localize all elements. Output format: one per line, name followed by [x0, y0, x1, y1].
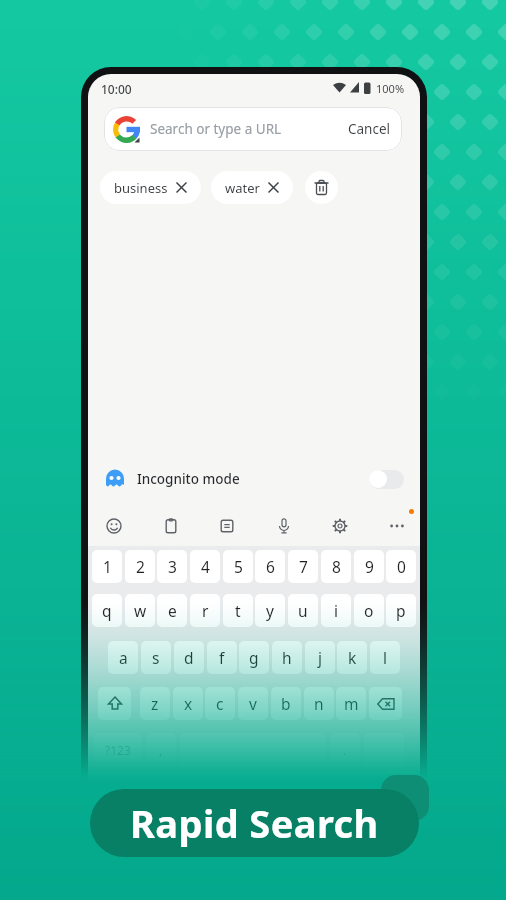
button[interactable]: 2 — [125, 550, 155, 583]
staticText: 2 — [136, 556, 145, 577]
staticText: l — [383, 647, 387, 668]
button[interactable]: h — [272, 641, 302, 674]
staticText: 4 — [201, 556, 210, 577]
button[interactable] — [369, 687, 402, 720]
button[interactable]: 0 — [386, 550, 416, 583]
staticText: 10:00 — [101, 81, 132, 97]
button[interactable]: r — [190, 594, 220, 627]
button[interactable]: 5 — [223, 550, 253, 583]
staticText: Cancel — [348, 120, 391, 138]
button[interactable]: 6 — [255, 550, 285, 583]
button[interactable]: x — [173, 687, 203, 720]
staticText: , — [159, 742, 163, 758]
staticText: m — [344, 693, 359, 714]
button[interactable]: 8 — [321, 550, 351, 583]
staticText: t — [235, 600, 241, 621]
staticText: 0 — [397, 556, 406, 577]
button[interactable]: Incognito mode — [104, 468, 404, 489]
button[interactable]: Cancel — [342, 114, 397, 144]
button[interactable] — [270, 512, 298, 540]
staticText: 3 — [168, 556, 177, 577]
staticText: w — [134, 600, 147, 621]
staticText: r — [202, 600, 209, 621]
button[interactable]: q — [92, 594, 122, 627]
staticText: Incognito mode — [137, 470, 240, 488]
button[interactable]: g — [239, 641, 269, 674]
button[interactable]: . — [330, 733, 360, 766]
button[interactable] — [180, 733, 326, 766]
staticText: p — [396, 600, 406, 621]
button[interactable]: z — [140, 687, 170, 720]
staticText: business — [114, 179, 168, 197]
staticText: . — [343, 742, 347, 758]
staticText: 7 — [299, 556, 308, 577]
button[interactable]: y — [255, 594, 285, 627]
button[interactable] — [213, 512, 241, 540]
button[interactable]: water — [211, 171, 293, 204]
button[interactable] — [305, 171, 338, 204]
button[interactable]: o — [354, 594, 384, 627]
staticText: e — [168, 600, 177, 621]
button[interactable]: m — [336, 687, 366, 720]
staticText: u — [298, 600, 308, 621]
button[interactable]: f — [207, 641, 237, 674]
button[interactable]: business — [100, 171, 201, 204]
staticText: o — [364, 600, 374, 621]
button[interactable]: v — [238, 687, 268, 720]
button[interactable]: a — [108, 641, 138, 674]
button[interactable]: d — [174, 641, 204, 674]
button[interactable]: u — [288, 594, 318, 627]
staticText: Search or type a URL — [150, 120, 282, 138]
staticText: d — [184, 647, 194, 668]
button[interactable]: Rapid Search — [90, 789, 419, 857]
staticText: c — [216, 693, 224, 714]
staticText: 1 — [103, 556, 112, 577]
staticText: n — [314, 693, 324, 714]
staticText: 8 — [332, 556, 341, 577]
staticText: 6 — [266, 556, 275, 577]
button[interactable]: i — [321, 594, 351, 627]
staticText: z — [151, 693, 159, 714]
button[interactable] — [157, 512, 185, 540]
button[interactable]: 3 — [157, 550, 187, 583]
button[interactable]: 9 — [354, 550, 384, 583]
staticText: i — [334, 600, 338, 621]
button[interactable] — [98, 687, 131, 720]
button[interactable]: 1 — [92, 550, 122, 583]
button[interactable]: j — [305, 641, 335, 674]
button[interactable]: b — [271, 687, 301, 720]
staticText: y — [266, 600, 274, 621]
staticText: v — [249, 693, 257, 714]
staticText: 9 — [365, 556, 374, 577]
button[interactable]: , — [146, 733, 176, 766]
button[interactable]: 7 — [288, 550, 318, 583]
button[interactable] — [364, 733, 404, 766]
button[interactable]: l — [370, 641, 400, 674]
staticText: j — [318, 647, 322, 668]
staticText: ?123 — [105, 742, 131, 758]
staticText: 100% — [376, 81, 405, 96]
button[interactable]: 4 — [190, 550, 220, 583]
button[interactable] — [326, 512, 354, 540]
button[interactable]: Search or type a URL — [104, 107, 402, 151]
button[interactable]: s — [141, 641, 171, 674]
staticText: q — [102, 600, 112, 621]
button[interactable] — [100, 512, 128, 540]
staticText: a — [119, 647, 128, 668]
staticText: s — [152, 647, 160, 668]
staticText: water — [225, 179, 260, 197]
button[interactable] — [383, 512, 411, 540]
button[interactable]: ?123 — [94, 733, 142, 766]
button[interactable]: k — [337, 641, 367, 674]
button[interactable]: c — [205, 687, 235, 720]
staticText: f — [219, 647, 225, 668]
button[interactable]: p — [386, 594, 416, 627]
button[interactable]: t — [223, 594, 253, 627]
staticText: h — [282, 647, 292, 668]
button[interactable]: w — [125, 594, 155, 627]
staticText: b — [281, 693, 291, 714]
button[interactable]: n — [304, 687, 334, 720]
button[interactable]: e — [157, 594, 187, 627]
staticText: k — [348, 647, 357, 668]
staticText: g — [249, 647, 259, 668]
